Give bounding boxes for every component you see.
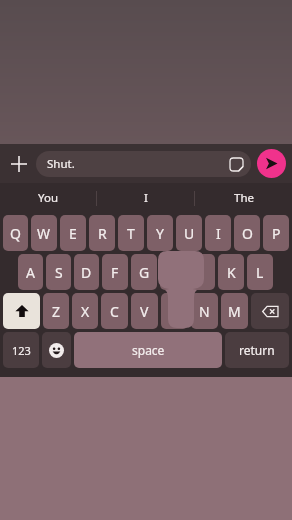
staticText: L xyxy=(256,263,264,282)
button[interactable]: K xyxy=(218,254,244,290)
button[interactable]: 123 xyxy=(3,332,39,368)
staticText: G xyxy=(139,263,150,282)
button[interactable]: Shift xyxy=(3,293,40,329)
button[interactable]: S xyxy=(46,254,71,290)
button[interactable]: I xyxy=(205,215,231,251)
staticText: You xyxy=(38,190,58,206)
button[interactable]: Z xyxy=(43,293,69,329)
button[interactable]: Add attachment xyxy=(6,151,32,177)
button[interactable]: The xyxy=(195,183,292,213)
staticText: O xyxy=(242,224,253,243)
button[interactable]: R xyxy=(89,215,115,251)
staticText: D xyxy=(81,263,92,282)
button[interactable]: G xyxy=(131,254,157,290)
button[interactable]: A xyxy=(18,254,43,290)
button[interactable]: Stickers xyxy=(227,155,245,173)
button[interactable]: O xyxy=(234,215,260,251)
button[interactable]: E xyxy=(60,215,86,251)
button[interactable]: Send xyxy=(257,149,286,178)
staticText: P xyxy=(272,224,281,243)
staticText: I xyxy=(216,224,221,243)
staticText: 123 xyxy=(12,343,31,358)
staticText: T xyxy=(127,224,135,243)
staticText: S xyxy=(55,263,63,282)
staticText: C xyxy=(110,302,119,321)
staticText: K xyxy=(227,263,236,282)
staticText: A xyxy=(26,263,35,282)
staticText: V xyxy=(140,302,149,321)
button[interactable]: Emoji xyxy=(42,332,71,368)
staticText: return xyxy=(239,342,275,358)
button[interactable]: Y xyxy=(147,215,173,251)
staticText: The xyxy=(234,190,254,206)
button[interactable]: return xyxy=(225,332,289,368)
button[interactable]: M xyxy=(221,293,248,329)
staticText: Y xyxy=(156,224,164,243)
button[interactable]: B xyxy=(161,293,188,329)
staticText: N xyxy=(199,302,210,321)
staticText: Z xyxy=(52,302,61,321)
button[interactable]: J xyxy=(189,254,215,290)
button[interactable]: N xyxy=(191,293,218,329)
staticText: I xyxy=(144,190,148,206)
staticText: space xyxy=(132,342,165,358)
button[interactable]: P xyxy=(263,215,289,251)
staticText: F xyxy=(111,263,119,282)
staticText: R xyxy=(98,224,107,243)
staticText: X xyxy=(81,302,90,321)
staticText: U xyxy=(184,224,195,243)
staticText: E xyxy=(69,224,77,243)
button[interactable]: Backspace xyxy=(251,293,289,329)
button[interactable]: space xyxy=(74,332,222,368)
button[interactable]: Shut. xyxy=(36,151,251,177)
button[interactable]: You xyxy=(0,183,96,213)
button[interactable]: T xyxy=(118,215,144,251)
button[interactable]: L xyxy=(247,254,273,290)
button[interactable]: V xyxy=(131,293,158,329)
button[interactable]: I xyxy=(97,183,194,213)
button[interactable]: H xyxy=(160,254,186,290)
button[interactable]: Q xyxy=(3,215,28,251)
staticText: M xyxy=(228,302,241,321)
button[interactable]: C xyxy=(101,293,128,329)
button[interactable]: D xyxy=(74,254,99,290)
button[interactable]: X xyxy=(72,293,98,329)
staticText: Shut. xyxy=(47,156,75,172)
staticText: Q xyxy=(10,224,21,243)
button[interactable]: U xyxy=(176,215,202,251)
button[interactable]: W xyxy=(31,215,57,251)
button[interactable]: F xyxy=(102,254,128,290)
staticText: W xyxy=(37,224,51,243)
